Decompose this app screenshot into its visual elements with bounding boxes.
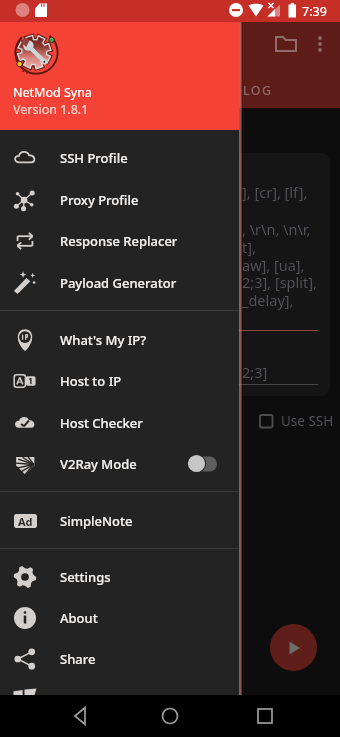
button[interactable]: Settings bbox=[0, 556, 239, 598]
staticText: , \r\n, \n\r, bbox=[242, 219, 311, 239]
staticText: Telegram bbox=[60, 691, 118, 709]
button[interactable]: About bbox=[0, 597, 239, 639]
button[interactable]: Host to IP bbox=[0, 360, 239, 402]
button[interactable]: Ad bbox=[0, 500, 239, 542]
staticText: What's My IP? bbox=[60, 331, 146, 349]
button[interactable]: Use SSH bbox=[255, 410, 334, 432]
staticText: Host to IP bbox=[60, 372, 122, 390]
button[interactable]: Home bbox=[142, 695, 198, 737]
button[interactable]: V2Ray Mode bbox=[0, 443, 239, 485]
staticText: Use SSH bbox=[281, 412, 334, 430]
button[interactable]: Host Checker bbox=[0, 402, 239, 444]
staticText: SimpleNote bbox=[60, 512, 133, 530]
staticText: Version 1.8.1 bbox=[13, 101, 89, 118]
button[interactable]: What's My IP? bbox=[0, 319, 239, 361]
staticText: ], [cr], [lf], bbox=[242, 182, 308, 202]
staticText: 7:39 bbox=[302, 3, 327, 20]
staticText: _delay], bbox=[242, 290, 294, 310]
button[interactable]: Recents bbox=[237, 695, 293, 737]
staticText: aw], [ua], bbox=[242, 255, 305, 275]
staticText: About bbox=[60, 609, 98, 627]
staticText: t], bbox=[242, 237, 256, 257]
staticText: Ad bbox=[18, 514, 33, 528]
button[interactable]: Share bbox=[0, 638, 239, 680]
button[interactable]: SSH Profile bbox=[0, 137, 239, 179]
button[interactable]: Payload Generator bbox=[0, 262, 239, 304]
staticText: Payload Generator bbox=[60, 274, 177, 292]
staticText: Response Replacer bbox=[60, 232, 178, 250]
staticText: V2Ray Mode bbox=[60, 455, 137, 473]
button[interactable]: LOG bbox=[185, 72, 330, 108]
button[interactable]: Proxy Profile bbox=[0, 179, 239, 221]
button[interactable]: Files bbox=[274, 32, 298, 56]
staticText: Settings bbox=[60, 568, 111, 586]
staticText: NetMod Syna bbox=[13, 84, 92, 101]
button[interactable]: Response Replacer bbox=[0, 220, 239, 262]
staticText: 2;3] bbox=[242, 362, 268, 382]
staticText: Proxy Profile bbox=[60, 191, 139, 209]
button[interactable]: Telegram bbox=[0, 679, 239, 721]
button[interactable]: PAYLOAD bbox=[70, 72, 185, 108]
staticText: Share bbox=[60, 650, 96, 668]
staticText: SSH Profile bbox=[60, 149, 128, 167]
button[interactable]: Start bbox=[270, 624, 317, 671]
staticText: 2;3], [split], bbox=[242, 272, 317, 292]
staticText: LOG bbox=[243, 82, 273, 99]
button[interactable]: Back bbox=[52, 695, 108, 737]
staticText: Host Checker bbox=[60, 414, 143, 432]
button[interactable]: More options bbox=[310, 32, 334, 56]
